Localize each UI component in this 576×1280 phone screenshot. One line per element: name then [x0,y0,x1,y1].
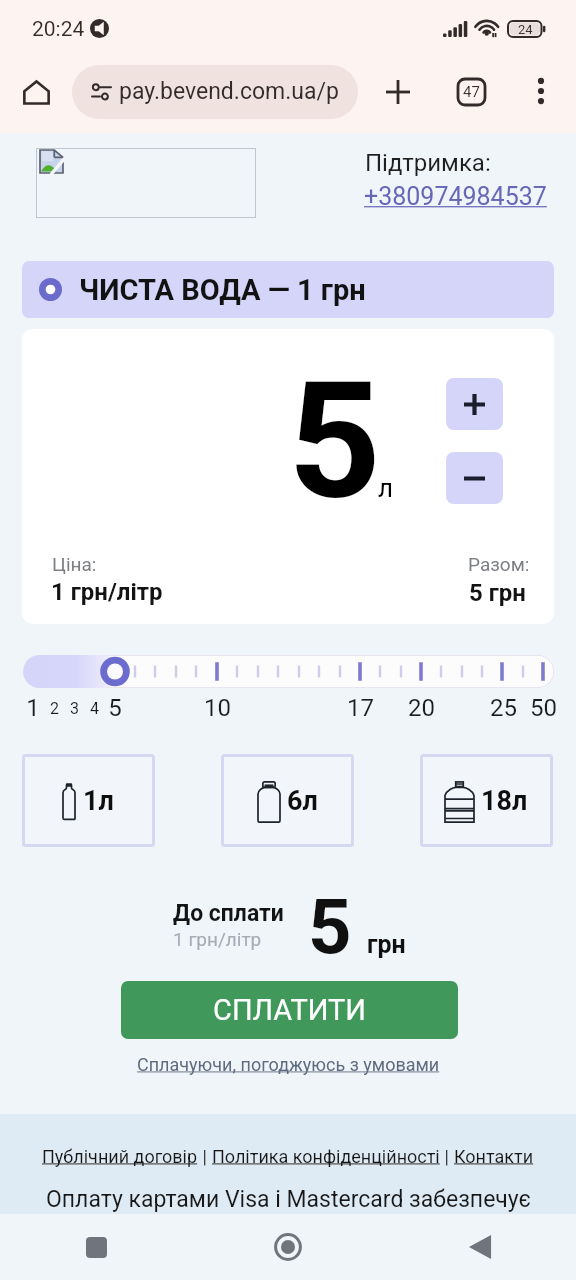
button[interactable]: Home [192,1214,384,1280]
button[interactable]: Політика конфіденційності [212,1146,440,1167]
staticText: До сплати [173,900,284,927]
staticText: 47 [463,83,480,101]
button[interactable]: 6л [221,754,354,847]
button[interactable]: pay.bevend.com.ua/p [72,65,358,119]
staticText: Разом: [468,553,530,575]
staticText: 5 [108,694,122,722]
staticText: 20:24 [32,17,85,42]
staticText: 25 [490,694,517,722]
button[interactable]: New tab [375,69,421,115]
button[interactable]: Volume slider [23,655,554,688]
button[interactable]: Контакти [454,1146,534,1167]
button[interactable]: Tabs [448,69,494,115]
button[interactable]: ЧИСТА ВОДА — 1 грн [22,261,554,318]
button[interactable]: 1л [22,754,155,847]
staticText: | [198,1146,212,1167]
staticText: 4 [90,699,99,718]
staticText: +380974984537 [364,182,547,211]
staticText: СПЛАТИТИ [213,993,367,1027]
staticText: 1 грн/літр [173,928,262,950]
button[interactable]: Публічний договір [42,1146,198,1167]
button[interactable]: +380974984537 [364,182,547,211]
staticText: 3 [70,699,79,718]
staticText: 1 [26,694,40,722]
staticText: Підтримка: [365,149,491,177]
staticText: Ціна: [52,553,97,575]
button[interactable]: Increase [446,378,503,430]
button[interactable]: Recent apps [0,1214,192,1280]
staticText: 24 [518,22,533,37]
staticText: 17 [347,694,374,722]
staticText: 18л [481,785,528,817]
staticText: грн [367,930,406,959]
staticText: 6л [287,785,318,817]
button[interactable]: Сплачуючи, погоджуюсь з умовами [137,1054,440,1075]
staticText: 5 [288,346,381,536]
staticText: 2 [50,699,59,718]
button[interactable]: More options [519,69,563,113]
button[interactable]: Back [384,1214,576,1280]
staticText: л [378,473,394,503]
button[interactable]: 18л [420,754,553,847]
staticText: 5 [308,882,352,971]
staticText: 50 [530,694,557,722]
staticText: Оплату картами Visa і Mastercard забезпе… [46,1186,531,1213]
staticText: 10 [204,694,231,722]
staticText: 20 [408,694,435,722]
button[interactable]: СПЛАТИТИ [121,981,458,1039]
staticText: pay.bevend.com.ua/p [119,78,339,105]
button[interactable]: Decrease [446,452,503,504]
staticText: 1 грн/літр [51,578,163,606]
staticText: 5 грн [469,579,526,607]
staticText: | [440,1146,454,1167]
button[interactable]: Home [14,70,58,114]
staticText: ЧИСТА ВОДА — 1 грн [79,273,366,307]
staticText: 1л [83,785,114,817]
